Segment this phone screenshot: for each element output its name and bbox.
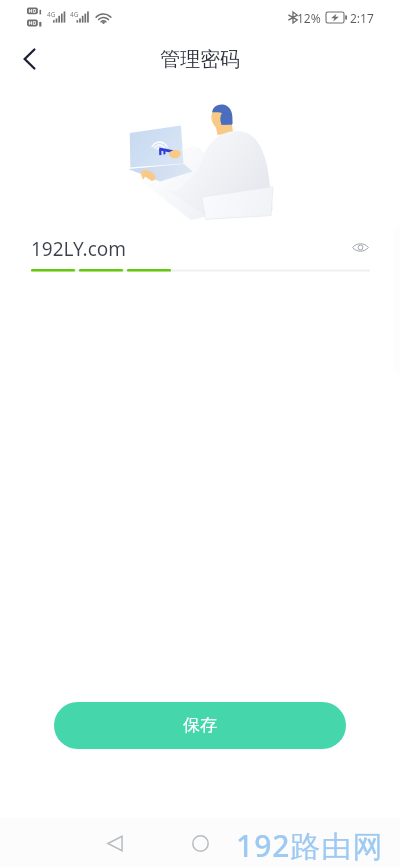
staticText: 4G — [70, 10, 79, 19]
staticText: 保存 — [183, 715, 217, 736]
button[interactable]: 保存 — [54, 702, 346, 749]
staticText: 12% — [297, 10, 321, 26]
button[interactable]: Back — [95, 823, 135, 863]
button[interactable]: Back — [8, 37, 52, 81]
button[interactable]: Home — [180, 823, 220, 863]
staticText: 4G — [47, 10, 56, 19]
button[interactable]: Show password — [343, 230, 377, 264]
button[interactable]: 192LY.com — [31, 228, 336, 270]
staticText: 管理密码 — [160, 47, 240, 72]
staticText: 2:17 — [350, 10, 374, 26]
staticText: 192路由网 — [236, 825, 384, 866]
staticText: 192LY.com — [31, 236, 127, 262]
